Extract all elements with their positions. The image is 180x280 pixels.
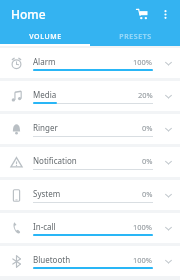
staticText: Media [33,89,57,100]
button[interactable]: More options [154,3,176,25]
staticText: In-call [33,221,56,232]
button[interactable]: Bluetooth [0,246,180,276]
button[interactable]: Alarm [0,48,180,78]
button[interactable]: Expand Notification [156,147,180,177]
staticText: 0% [142,123,153,133]
staticText: Alarm [33,56,56,67]
button[interactable]: Notification [0,147,180,177]
button[interactable]: Media [0,81,180,111]
staticText: 0% [142,156,153,166]
staticText: System [33,188,61,199]
button[interactable]: Expand Alarm [156,48,180,78]
button[interactable]: In-call [0,213,180,243]
staticText: 100% [133,57,153,67]
button[interactable]: VOLUME [0,28,90,46]
staticText: Ringer [33,122,58,133]
staticText: Home [11,6,46,22]
staticText: 100% [133,255,153,265]
button[interactable]: PRESETS [90,28,180,46]
staticText: PRESETS [119,32,152,42]
button[interactable]: Expand System [156,180,180,210]
button[interactable]: Expand In-call [156,213,180,243]
staticText: 20% [138,90,153,100]
button[interactable]: System [0,180,180,210]
staticText: 100% [133,222,153,232]
button[interactable]: Ringer [0,114,180,144]
button[interactable]: Expand Ringer [156,114,180,144]
staticText: Bluetooth [33,254,71,265]
button[interactable]: Expand Media [156,81,180,111]
staticText: Notification [33,155,77,166]
button[interactable]: Cart [130,2,154,26]
button[interactable]: Expand Bluetooth [156,246,180,276]
staticText: VOLUME [29,32,62,42]
staticText: 0% [142,189,153,199]
